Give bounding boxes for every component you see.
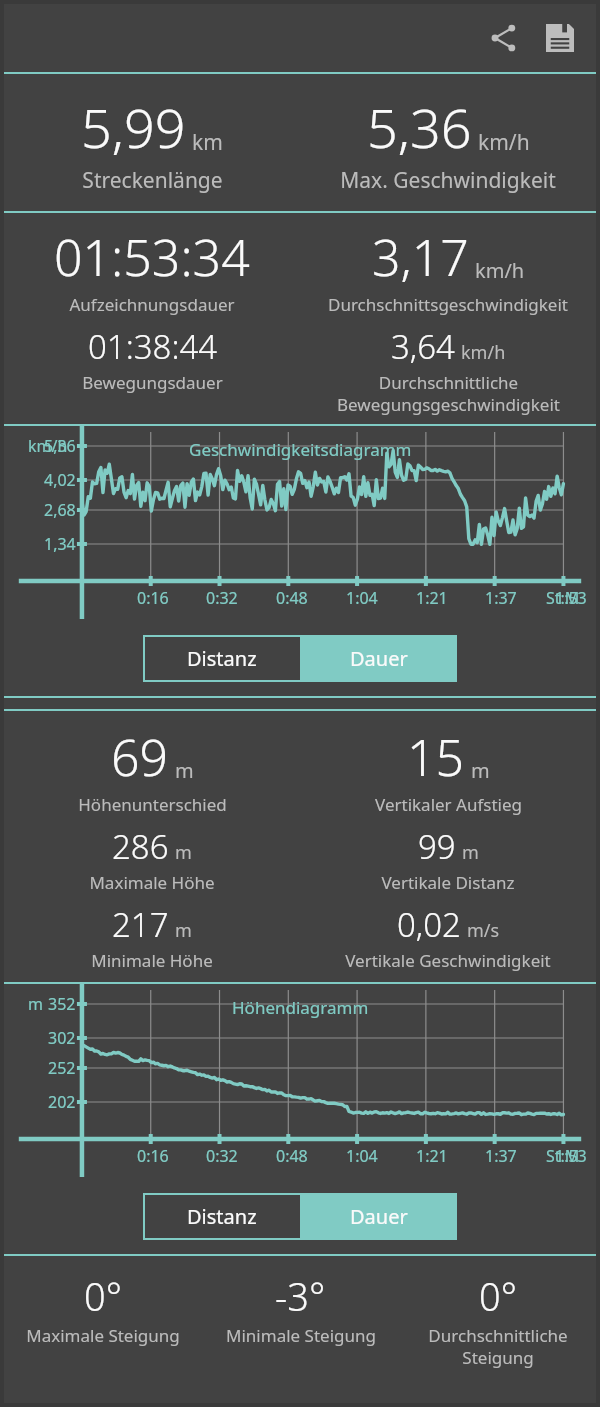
staticText: 0:48 bbox=[276, 1145, 308, 1167]
button[interactable]: Share bbox=[480, 14, 528, 62]
staticText: 01:53:34 bbox=[54, 223, 250, 291]
staticText: m bbox=[28, 993, 43, 1015]
staticText: Streckenlänge bbox=[82, 166, 223, 195]
staticText: 0° bbox=[84, 1270, 122, 1322]
staticText: m bbox=[462, 840, 479, 865]
staticText: 202 bbox=[48, 1091, 76, 1113]
staticText: Dauer bbox=[350, 1203, 408, 1230]
staticText: Höhendiagramm bbox=[232, 996, 369, 1019]
staticText: 217 bbox=[112, 902, 169, 947]
staticText: St:M bbox=[546, 587, 580, 609]
staticText: m bbox=[175, 918, 192, 943]
staticText: -3° bbox=[275, 1270, 326, 1322]
staticText: m bbox=[175, 840, 192, 865]
staticText: 1:53 bbox=[555, 587, 587, 609]
staticText: Durchschnittliche Bewegungsgeschwindigke… bbox=[337, 371, 560, 416]
staticText: 5,36 bbox=[367, 90, 472, 164]
staticText: m bbox=[471, 757, 490, 784]
staticText: 01:38:44 bbox=[88, 324, 218, 369]
staticText: Maximale Höhe bbox=[89, 871, 215, 894]
staticText: 1:21 bbox=[416, 587, 448, 609]
button[interactable]: Dauer bbox=[300, 635, 457, 682]
staticText: Distanz bbox=[187, 1203, 257, 1230]
staticText: km bbox=[192, 128, 223, 157]
staticText: 1:04 bbox=[346, 1145, 378, 1167]
staticText: 0:32 bbox=[206, 587, 238, 609]
staticText: 1:53 bbox=[555, 1145, 587, 1167]
staticText: 4,02 bbox=[44, 469, 76, 491]
staticText: 1:37 bbox=[485, 1145, 517, 1167]
staticText: 15 bbox=[407, 723, 465, 791]
button[interactable]: Save bbox=[536, 14, 584, 62]
staticText: m bbox=[175, 757, 194, 784]
staticText: 5,36 bbox=[44, 435, 76, 457]
staticText: Vertikaler Aufstieg bbox=[375, 793, 522, 816]
staticText: m/s bbox=[467, 918, 500, 943]
staticText: 3,17 bbox=[372, 223, 469, 291]
staticText: 286 bbox=[112, 824, 169, 869]
staticText: 252 bbox=[48, 1057, 76, 1079]
staticText: km/h bbox=[475, 257, 525, 284]
staticText: Minimale Höhe bbox=[91, 949, 213, 972]
staticText: 302 bbox=[48, 1027, 76, 1049]
staticText: 3,64 bbox=[391, 324, 455, 369]
staticText: Max. Geschwindigkeit bbox=[340, 166, 556, 195]
staticText: Durchschnittsgeschwindigkeit bbox=[328, 293, 568, 316]
staticText: km/h bbox=[478, 128, 530, 157]
button[interactable]: Dauer bbox=[300, 1193, 457, 1240]
staticText: 352 bbox=[48, 993, 76, 1015]
staticText: Distanz bbox=[187, 645, 257, 672]
staticText: Aufzeichnungsdauer bbox=[69, 293, 235, 316]
staticText: 99 bbox=[418, 824, 456, 869]
staticText: 0:16 bbox=[137, 1145, 169, 1167]
staticText: 5,99 bbox=[81, 90, 186, 164]
staticText: St:M bbox=[546, 1145, 580, 1167]
staticText: 0° bbox=[479, 1270, 517, 1322]
button[interactable]: Distanz bbox=[143, 635, 300, 682]
staticText: 0:48 bbox=[276, 587, 308, 609]
staticText: Vertikale Distanz bbox=[381, 871, 515, 894]
staticText: 0,02 bbox=[397, 902, 461, 947]
staticText: km/h bbox=[461, 340, 506, 365]
staticText: 0:32 bbox=[206, 1145, 238, 1167]
staticText: Dauer bbox=[350, 645, 408, 672]
staticText: Geschwindigkeitsdiagramm bbox=[189, 438, 412, 461]
staticText: km/h bbox=[28, 435, 68, 457]
staticText: 69 bbox=[111, 723, 169, 791]
staticText: Maximale Steigung bbox=[26, 1324, 180, 1347]
staticText: Durchschnittliche Steigung bbox=[428, 1324, 568, 1369]
staticText: Minimale Steigung bbox=[226, 1324, 376, 1347]
button[interactable]: Distanz bbox=[143, 1193, 300, 1240]
staticText: Höhenunterschied bbox=[78, 793, 227, 816]
staticText: 1,34 bbox=[44, 533, 76, 555]
staticText: 1:21 bbox=[416, 1145, 448, 1167]
staticText: 2,68 bbox=[44, 499, 76, 521]
staticText: Vertikale Geschwindigkeit bbox=[345, 949, 551, 972]
staticText: Bewegungsdauer bbox=[82, 371, 223, 394]
staticText: 1:37 bbox=[485, 587, 517, 609]
staticText: 0:16 bbox=[137, 587, 169, 609]
staticText: 1:04 bbox=[346, 587, 378, 609]
